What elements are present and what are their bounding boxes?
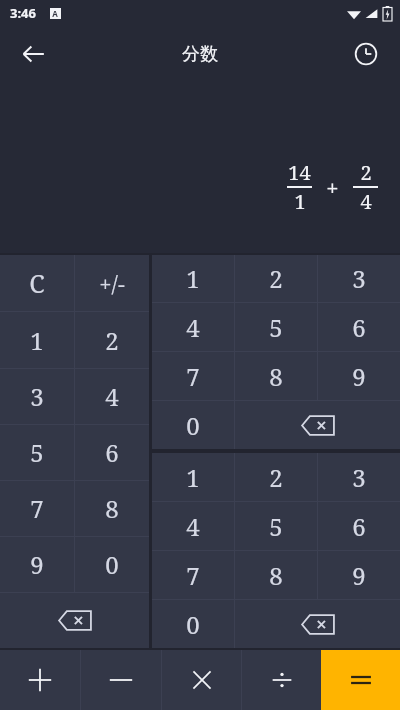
button[interactable]: 8 — [75, 481, 149, 536]
staticText: 5 — [269, 311, 283, 344]
staticText: 6 — [352, 510, 366, 543]
button[interactable]: 3 — [0, 369, 74, 424]
button[interactable]: 6 — [318, 502, 400, 550]
staticText: 9 — [352, 559, 366, 592]
staticText: 7 — [186, 360, 200, 393]
staticText: 2 — [269, 262, 283, 295]
staticText: A — [52, 8, 58, 19]
staticText: 4 — [186, 510, 200, 543]
staticText: 2 — [269, 461, 283, 494]
button[interactable]: 2 — [235, 255, 317, 302]
staticText: 3 — [352, 262, 366, 295]
button[interactable]: Backspace — [235, 600, 400, 648]
staticText: 5 — [269, 510, 283, 543]
button[interactable]: Backspace — [0, 593, 149, 648]
button[interactable]: Equals — [321, 650, 400, 710]
button[interactable]: Plus — [0, 650, 80, 710]
button[interactable]: 2 — [75, 312, 149, 368]
staticText: C — [29, 266, 45, 300]
button[interactable]: Multiply — [162, 650, 241, 710]
staticText: 2 — [105, 324, 119, 357]
staticText: 6 — [105, 436, 119, 469]
button[interactable]: 2 — [235, 453, 317, 501]
staticText: 3 — [352, 461, 366, 494]
button[interactable]: Back — [14, 34, 54, 74]
button[interactable]: 7 — [0, 481, 74, 536]
staticText: 8 — [105, 492, 119, 525]
staticText: +/- — [99, 268, 125, 298]
button[interactable]: 3 — [318, 453, 400, 501]
staticText: 1 — [294, 188, 306, 215]
staticText: 7 — [30, 492, 44, 525]
staticText: 1 — [186, 262, 200, 295]
staticText: 3:46 — [10, 4, 36, 22]
button[interactable]: 1 — [152, 255, 234, 302]
button[interactable]: 1 — [0, 312, 74, 368]
staticText: 14 — [288, 159, 311, 186]
button[interactable]: 6 — [75, 425, 149, 480]
button[interactable]: 5 — [235, 303, 317, 351]
button[interactable]: 4 — [152, 502, 234, 550]
button[interactable]: 7 — [152, 352, 234, 400]
button[interactable]: Backspace — [235, 401, 400, 449]
button[interactable]: +/- — [75, 255, 149, 311]
staticText: 0 — [105, 548, 119, 581]
button[interactable]: 6 — [318, 303, 400, 351]
button[interactable]: 4 — [152, 303, 234, 351]
staticText: 9 — [30, 548, 44, 581]
staticText: 0 — [186, 409, 200, 442]
button[interactable]: 1 — [152, 453, 234, 501]
button[interactable]: 9 — [318, 352, 400, 400]
staticText: 2 — [360, 159, 372, 186]
button[interactable]: 9 — [318, 551, 400, 599]
staticText: 8 — [269, 360, 283, 393]
button[interactable]: 5 — [0, 425, 74, 480]
button[interactable]: 0 — [75, 537, 149, 592]
button[interactable]: Minus — [81, 650, 161, 710]
staticText: 1 — [30, 324, 44, 357]
button[interactable]: Divide — [242, 650, 321, 710]
staticText: 7 — [186, 559, 200, 592]
staticText: 6 — [352, 311, 366, 344]
staticText: 9 — [352, 360, 366, 393]
staticText: 分数 — [182, 43, 218, 66]
button[interactable]: 7 — [152, 551, 234, 599]
button[interactable]: 0 — [152, 600, 234, 648]
button[interactable]: C — [0, 255, 74, 311]
button[interactable]: 5 — [235, 502, 317, 550]
button[interactable]: 3 — [318, 255, 400, 302]
staticText: 5 — [30, 436, 44, 469]
button[interactable]: 4 — [75, 369, 149, 424]
staticText: 8 — [269, 559, 283, 592]
staticText: 1 — [186, 461, 200, 494]
staticText: 4 — [186, 311, 200, 344]
button[interactable]: 8 — [235, 352, 317, 400]
staticText: 4 — [105, 380, 119, 413]
staticText: + — [326, 172, 339, 202]
staticText: 3 — [30, 380, 44, 413]
button[interactable]: 0 — [152, 401, 234, 449]
staticText: 0 — [186, 608, 200, 641]
button[interactable]: 9 — [0, 537, 74, 592]
staticText: 4 — [360, 188, 372, 215]
button[interactable]: 8 — [235, 551, 317, 599]
button[interactable]: History — [346, 34, 386, 74]
